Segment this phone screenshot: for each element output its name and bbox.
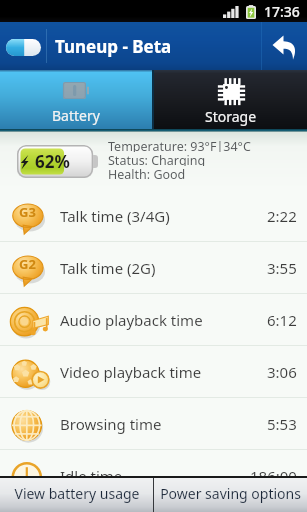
staticText: Temperature: 93°F|34°C [108,138,251,152]
staticText: Storage [205,107,257,126]
staticText: Talk time (3/4G) [60,206,170,226]
staticText: 17:36 [264,2,300,21]
button[interactable]: G3 [0,190,307,241]
button[interactable]: Idle time [0,450,307,501]
staticText: Power saving options [160,484,301,503]
button[interactable]: Video playback time [0,346,307,397]
staticText: Health: Good [108,166,186,180]
staticText: Idle time [60,466,123,486]
staticText: Tuneup - Beta [55,35,172,58]
staticText: Talk time (2G) [60,258,156,278]
staticText: Battery [52,106,100,125]
button[interactable]: View battery usage [0,478,153,512]
staticText: G3 [19,203,36,221]
staticText: View battery usage [14,484,140,503]
staticText: 6:12 [267,310,297,330]
staticText: Audio playback time [60,310,203,330]
staticText: 5:53 [267,414,297,434]
button[interactable]: Storage [154,70,307,129]
staticText: G2 [19,255,36,273]
button[interactable]: Browsing time [0,398,307,449]
button[interactable]: Battery [0,70,152,129]
button[interactable]: Power saving options [154,478,307,512]
staticText: 186:00 [250,466,297,486]
staticText: 62% [35,150,70,173]
staticText: Browsing time [60,414,162,434]
button[interactable]: Tuneup home [0,22,46,70]
button[interactable]: G2 [0,242,307,293]
staticText: Video playback time [60,362,202,382]
staticText: 2:22 [267,206,297,226]
button[interactable]: Audio playback time [0,294,307,345]
staticText: 3:06 [267,362,297,382]
button[interactable]: Back [262,22,307,70]
staticText: Status: Charging [108,152,206,166]
staticText: 3:55 [267,258,297,278]
